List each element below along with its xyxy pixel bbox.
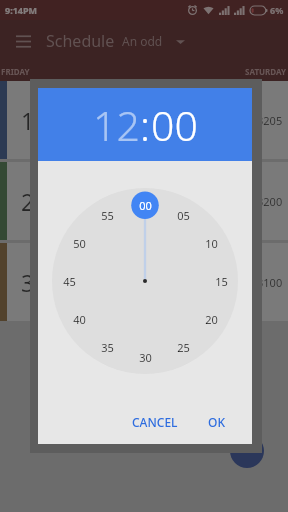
staticText: 05 <box>177 208 190 223</box>
button[interactable]: Open navigation drawer <box>10 28 36 54</box>
staticText: 00 <box>139 198 152 213</box>
staticText: 25 <box>177 340 190 355</box>
staticText: 40 <box>73 312 86 327</box>
staticText: 3100 <box>257 275 283 290</box>
staticText: 2 <box>21 186 35 217</box>
staticText: 9:14PM <box>5 4 38 16</box>
button[interactable]: Add schedule <box>230 434 264 468</box>
button[interactable]: An odd <box>122 33 185 49</box>
staticText: 1 <box>21 105 35 136</box>
staticText: 3205 <box>257 113 283 128</box>
staticText: An odd <box>122 33 163 49</box>
staticText: CANCEL <box>132 414 178 430</box>
staticText: SATURDAY <box>245 66 287 77</box>
button[interactable]: 1 <box>0 81 288 159</box>
button[interactable]: OK <box>201 408 232 436</box>
staticText: FRIDAY <box>1 66 30 77</box>
button[interactable]: 00 <box>151 97 198 153</box>
staticText: 6% <box>270 4 284 16</box>
button[interactable]: Minute dial <box>52 188 238 374</box>
staticText: 30 <box>139 350 152 365</box>
staticText: 3 <box>21 267 35 298</box>
staticText: Schedule <box>46 30 115 52</box>
staticText: 45 <box>63 274 76 289</box>
button[interactable]: 3 <box>0 243 288 321</box>
staticText: 55 <box>101 208 114 223</box>
button[interactable]: 2 <box>0 162 288 240</box>
staticText: 20 <box>205 312 218 327</box>
button[interactable]: CANCEL <box>125 408 185 436</box>
staticText: OK <box>208 414 225 430</box>
button[interactable]: 12 <box>93 97 140 153</box>
staticText: 50 <box>73 236 86 251</box>
staticText: 10 <box>205 236 218 251</box>
staticText: 35 <box>101 340 114 355</box>
staticText: 3200 <box>257 194 283 209</box>
staticText: 15 <box>215 274 228 289</box>
staticText: : <box>140 97 151 153</box>
